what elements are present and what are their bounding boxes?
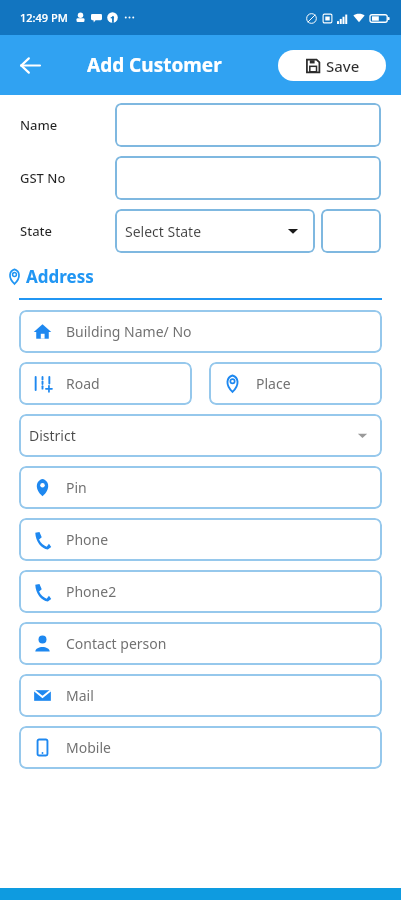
button[interactable]: Pin xyxy=(19,466,382,509)
staticText: Mobile xyxy=(66,738,111,757)
button[interactable]: Select State xyxy=(115,209,315,253)
staticText: Phone2 xyxy=(66,582,117,601)
staticText: Road xyxy=(66,374,100,393)
button[interactable]: Building Name/ No xyxy=(19,310,382,353)
button[interactable]: Mail xyxy=(19,674,382,717)
staticText: Name xyxy=(20,116,58,134)
staticText: Place xyxy=(256,374,291,393)
staticText: State xyxy=(20,222,53,240)
button[interactable]: Phone xyxy=(19,518,382,561)
staticText: 12:49 PM xyxy=(20,10,68,25)
button[interactable]: Road xyxy=(19,362,192,405)
staticText: Contact person xyxy=(66,634,167,653)
staticText: Select State xyxy=(125,222,202,241)
button[interactable]: Place xyxy=(209,362,382,405)
staticText: Pin xyxy=(66,478,87,497)
staticText: Save xyxy=(326,56,360,76)
button[interactable]: Save xyxy=(278,50,386,81)
staticText: Mail xyxy=(66,686,94,705)
button[interactable] xyxy=(115,103,381,147)
staticText: Building Name/ No xyxy=(66,322,192,341)
staticText: Phone xyxy=(66,530,109,549)
button[interactable]: Phone2 xyxy=(19,570,382,613)
staticText: GST No xyxy=(20,169,66,187)
staticText: District xyxy=(29,426,76,445)
staticText: Add Customer xyxy=(87,52,222,78)
button[interactable]: Mobile xyxy=(19,726,382,769)
button[interactable]: Back xyxy=(12,47,48,83)
button[interactable]: District xyxy=(19,414,382,457)
button[interactable] xyxy=(115,156,381,200)
button[interactable] xyxy=(321,209,381,253)
staticText: Address xyxy=(26,265,94,288)
button[interactable]: Contact person xyxy=(19,622,382,665)
